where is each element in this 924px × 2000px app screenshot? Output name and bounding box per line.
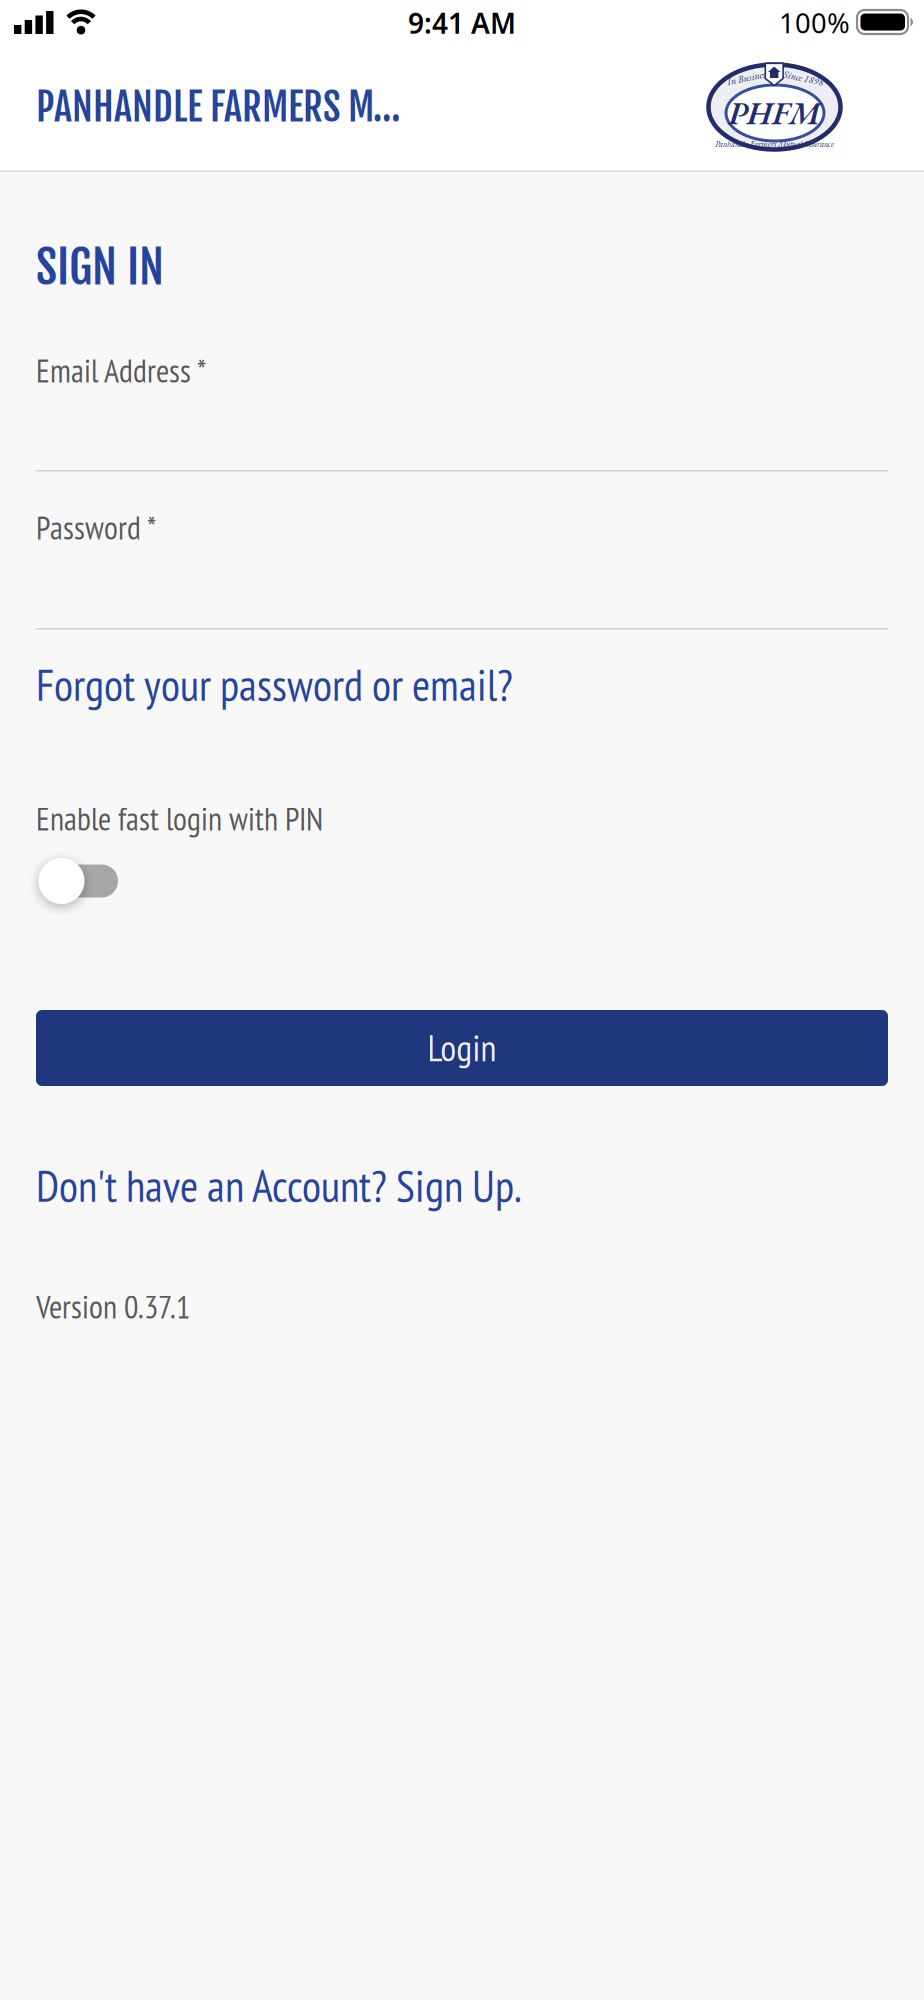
staticText: PANHANDLE FARMERS M… (36, 83, 401, 131)
staticText: Forgot your password or email? (36, 656, 513, 713)
staticText: Since 1898 (783, 71, 824, 85)
button[interactable]: Email Address * (36, 346, 888, 472)
staticText: Enable fast login with PIN (36, 798, 323, 839)
button[interactable]: Don't have an Account? Sign Up. (36, 1157, 522, 1214)
staticText: Don't have an Account? Sign Up. (36, 1157, 522, 1214)
staticText: Login (427, 1025, 496, 1071)
button[interactable]: Login (36, 1010, 888, 1086)
staticText: Password * (36, 507, 156, 548)
staticText: Panhandle Farmers Mutual Insurance (715, 138, 834, 149)
staticText: In Business (726, 71, 768, 84)
staticText: PHFM (728, 92, 821, 134)
button[interactable]: Forgot your password or email? (36, 656, 513, 713)
staticText: 9:41 AM (408, 4, 516, 42)
staticText: 100% (779, 4, 850, 41)
staticText: Version 0.37.1 (36, 1286, 190, 1327)
staticText: SIGN IN (36, 238, 164, 296)
staticText: Email Address * (36, 350, 206, 391)
button[interactable]: Password * (36, 502, 888, 630)
button[interactable] (35, 854, 117, 904)
